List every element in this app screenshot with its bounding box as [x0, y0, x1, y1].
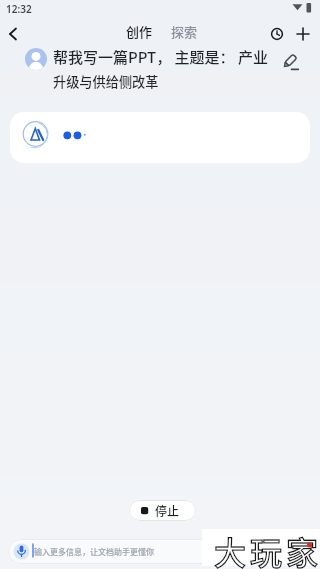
button[interactable]: [293, 24, 313, 44]
button[interactable]: [267, 24, 287, 44]
button[interactable]: [10, 112, 310, 163]
staticText: 帮我写一篇PPT， 主题是： 产业 升级与供给侧改革: [53, 46, 268, 91]
button[interactable]: [2, 23, 24, 45]
button[interactable]: 创作: [126, 22, 153, 40]
staticText: 创作: [126, 22, 153, 40]
staticText: 12:32: [6, 2, 32, 16]
staticText: 大玩家: [214, 528, 320, 569]
button[interactable]: [280, 52, 300, 72]
button[interactable]: 探索: [171, 22, 198, 40]
button[interactable]: 停止: [129, 500, 196, 521]
button[interactable]: 输入更多信息，让文档助手更懂你: [8, 539, 312, 564]
staticText: 输入更多信息，让文档助手更懂你: [34, 546, 154, 558]
staticText: 探索: [171, 22, 198, 40]
staticText: 停止: [155, 502, 180, 519]
